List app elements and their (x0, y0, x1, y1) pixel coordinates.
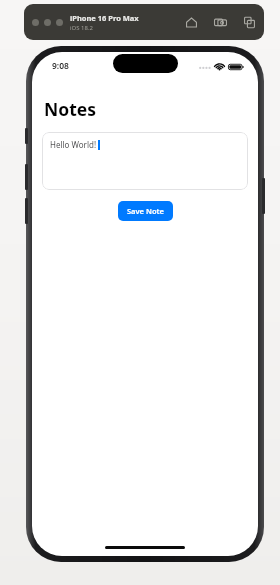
staticText: Hello World! (50, 139, 97, 150)
button[interactable]: Save Note (118, 201, 173, 221)
staticText: iOS 18.2 (70, 24, 93, 32)
button[interactable]: Hello World! (42, 132, 248, 190)
button[interactable] (32, 19, 39, 26)
button[interactable] (44, 19, 51, 26)
button[interactable] (56, 19, 63, 26)
staticText: iPhone 16 Pro Max (70, 13, 139, 23)
staticText: Save Note (127, 206, 164, 216)
staticText: Notes (44, 97, 96, 121)
button[interactable]: Home (183, 14, 199, 30)
button[interactable]: Rotate device (241, 14, 257, 30)
staticText: 9:08 (52, 60, 69, 72)
button[interactable]: Screenshot (212, 14, 228, 30)
